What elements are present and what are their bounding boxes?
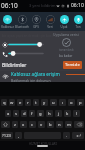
button[interactable]: j <box>55 110 62 117</box>
staticText: Uçak modu <box>57 25 71 29</box>
staticText: z <box>14 122 16 128</box>
button[interactable]: ı <box>59 99 66 106</box>
button[interactable]: Veri <box>43 12 57 31</box>
staticText: m <box>67 122 71 128</box>
button[interactable]: a <box>5 110 11 117</box>
staticText: q <box>3 100 6 106</box>
button[interactable]: w <box>9 99 15 106</box>
button[interactable]: q <box>1 99 7 106</box>
staticText: 06:10 <box>1 1 18 10</box>
button[interactable]: l <box>73 110 80 117</box>
button[interactable]: y <box>41 99 48 106</box>
staticText: j <box>58 111 60 117</box>
staticText: p <box>79 100 82 106</box>
button[interactable]: v <box>38 121 45 128</box>
button[interactable]: GPS <box>29 12 43 31</box>
staticText: 06:10 <box>71 2 84 9</box>
button[interactable]: c <box>29 121 36 128</box>
button[interactable]: , <box>15 132 22 139</box>
staticText: GPS <box>33 25 39 29</box>
staticText: Bluetooth <box>15 25 29 29</box>
button[interactable]: u <box>50 99 57 106</box>
staticText: v <box>40 122 43 128</box>
staticText: . <box>66 133 68 139</box>
staticText: y <box>43 100 46 106</box>
button[interactable]: b <box>47 121 54 128</box>
staticText: o <box>70 100 73 106</box>
button[interactable]: d <box>21 110 27 117</box>
staticText: c <box>31 122 34 128</box>
staticText: l <box>76 111 78 117</box>
button[interactable]: s <box>13 110 19 117</box>
button[interactable]: Kablosuz ağlara erişim <box>0 71 85 82</box>
button[interactable]: m <box>65 121 72 128</box>
staticText: x <box>22 122 25 128</box>
staticText: a <box>7 111 10 117</box>
staticText: , <box>18 133 20 139</box>
button[interactable]: f <box>29 110 35 117</box>
staticText: ı <box>62 100 64 106</box>
button[interactable]: Temizle <box>63 61 82 69</box>
button[interactable]: ?123 <box>1 132 13 139</box>
staticText: Temizle <box>65 62 80 68</box>
staticText: f <box>31 111 33 117</box>
staticText: g <box>39 111 42 117</box>
staticText: d <box>23 111 26 117</box>
button[interactable]: x <box>20 121 27 128</box>
staticText: b <box>49 122 52 128</box>
button[interactable] <box>72 132 84 139</box>
staticText: Kablosuz ağlara erişim <box>11 71 60 77</box>
staticText: n <box>58 122 61 128</box>
button[interactable] <box>1 121 10 128</box>
button[interactable]: g <box>37 110 44 117</box>
button[interactable]: Kablosuz <box>0 12 15 31</box>
staticText: bir ayarı yapılandırmak için basılı tut <box>2 33 60 38</box>
staticText: tamamlandı <box>59 48 74 52</box>
staticText: Veri <box>47 25 53 29</box>
button[interactable] <box>74 121 84 128</box>
button[interactable]: h <box>46 110 53 117</box>
staticText: HİZMET KOŞULLARI <box>29 142 57 146</box>
staticText: 3 yeni bildirim <box>29 3 56 8</box>
button[interactable]: Bluetooth <box>15 12 29 31</box>
staticText: t <box>35 100 37 106</box>
staticText: e <box>19 100 22 106</box>
staticText: Bağlanmak için dokunun <box>11 78 51 82</box>
button[interactable]: t <box>33 99 39 106</box>
staticText: Bildirimler <box>2 62 27 69</box>
staticText: bu kadar <box>59 54 73 58</box>
button[interactable]: o <box>68 99 75 106</box>
staticText: u <box>52 100 55 106</box>
button[interactable]: r <box>25 99 31 106</box>
button[interactable]: e <box>17 99 23 106</box>
button[interactable]: Ton <box>71 12 85 31</box>
button[interactable]: k <box>64 110 71 117</box>
staticText: Uygulama verisi <box>53 32 79 37</box>
staticText: k <box>66 111 69 117</box>
button[interactable]: n <box>56 121 63 128</box>
staticText: w <box>10 100 14 106</box>
staticText: Ton <box>75 25 81 29</box>
staticText: Kablosuz <box>1 25 14 29</box>
button[interactable]: . <box>63 132 70 139</box>
button[interactable]: Uçak modu <box>57 12 71 31</box>
button[interactable]: p <box>77 99 84 106</box>
staticText: h <box>48 111 51 117</box>
staticText: r <box>27 100 29 106</box>
staticText: s <box>15 111 18 117</box>
staticText: ?123 <box>2 133 12 139</box>
button[interactable]: z <box>12 121 18 128</box>
